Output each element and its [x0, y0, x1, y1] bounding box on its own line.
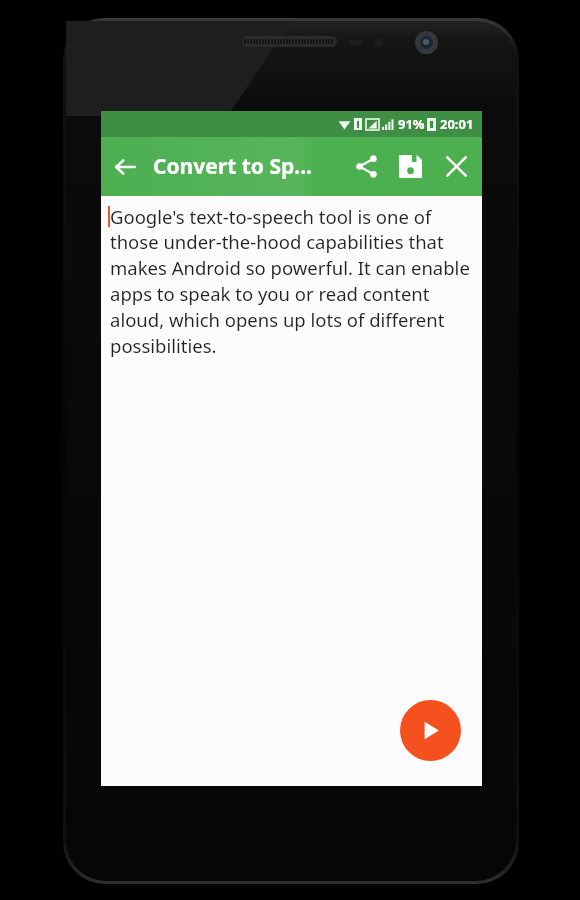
button[interactable]: Close: [432, 137, 480, 196]
button[interactable]: Google's text-to-speech tool is one of t…: [110, 204, 477, 359]
staticText: Convert to Sp...: [153, 152, 312, 181]
staticText: 20:01: [440, 115, 474, 133]
button[interactable]: Back: [101, 137, 149, 196]
button[interactable]: Share: [344, 137, 388, 196]
button[interactable]: Save: [388, 137, 432, 196]
button[interactable]: Play: [400, 700, 461, 761]
staticText: 91%: [398, 115, 425, 133]
